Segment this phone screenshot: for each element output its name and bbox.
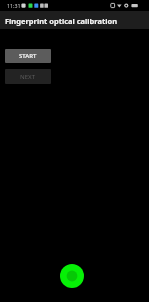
staticText: NEXT (20, 73, 36, 81)
button[interactable]: START (5, 49, 51, 63)
staticText: 11:31 (7, 2, 21, 9)
staticText: Fingerprint optical calibration (5, 16, 118, 26)
staticText: START (19, 52, 37, 60)
other: Calibration indicator (60, 264, 84, 288)
button[interactable]: NEXT (5, 69, 51, 84)
